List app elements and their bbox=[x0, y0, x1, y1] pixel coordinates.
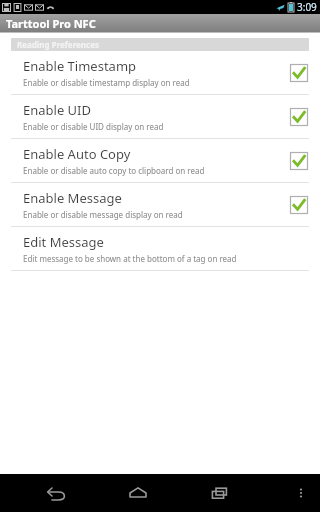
button[interactable]: More options bbox=[286, 478, 316, 508]
staticText: Enable or disable UID display on read bbox=[23, 121, 164, 132]
staticText: Enable or disable message display on rea… bbox=[23, 209, 183, 220]
staticText: 3:09 bbox=[297, 0, 317, 14]
button[interactable]: Enable Auto Copy bbox=[0, 139, 320, 183]
staticText: Enable UID bbox=[23, 101, 92, 119]
button[interactable]: Enable Timestamp bbox=[0, 51, 320, 95]
button[interactable]: Enable UID bbox=[0, 95, 320, 139]
button[interactable]: Home bbox=[118, 474, 158, 512]
staticText: Tarttool Pro NFC bbox=[6, 16, 96, 31]
button[interactable]: Edit Message bbox=[0, 227, 320, 271]
button[interactable]: Recent apps bbox=[200, 474, 240, 512]
button[interactable]: Enable Message bbox=[0, 183, 320, 227]
button[interactable]: Back bbox=[36, 474, 76, 512]
staticText: Enable Auto Copy bbox=[23, 145, 131, 163]
other: Toggle bbox=[290, 108, 308, 126]
staticText: Enable Timestamp bbox=[23, 57, 137, 75]
staticText: Edit message to be shown at the bottom o… bbox=[23, 253, 237, 264]
staticText: Edit Message bbox=[23, 233, 104, 251]
staticText: Reading Preferences bbox=[17, 39, 99, 50]
staticText: Enable or disable timestamp display on r… bbox=[23, 77, 190, 88]
staticText: Enable Message bbox=[23, 189, 122, 207]
other: Toggle bbox=[290, 152, 308, 170]
other: Toggle bbox=[290, 64, 308, 82]
staticText: Enable or disable auto copy to clipboard… bbox=[23, 165, 205, 176]
other: Toggle bbox=[290, 196, 308, 214]
